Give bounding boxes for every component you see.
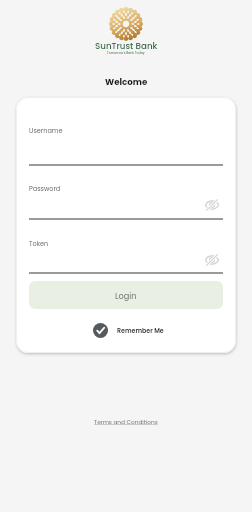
- button[interactable]: Terms and Conditions: [94, 418, 158, 426]
- button[interactable]: Toggle password visibility: [202, 195, 222, 215]
- button[interactable]: Remember Me: [93, 323, 164, 338]
- staticText: Login: [115, 290, 137, 301]
- staticText: Password: [29, 184, 61, 193]
- staticText: Token: [29, 239, 49, 248]
- button[interactable]: Toggle password visibility: [202, 250, 222, 270]
- staticText: Remember Me: [117, 326, 164, 335]
- staticText: Tomorrow's Bank Today: [107, 51, 145, 55]
- staticText: Username: [29, 126, 63, 135]
- button[interactable]: Login: [29, 281, 223, 309]
- staticText: Welcome: [105, 76, 148, 88]
- staticText: SunTrust Bank: [95, 40, 158, 52]
